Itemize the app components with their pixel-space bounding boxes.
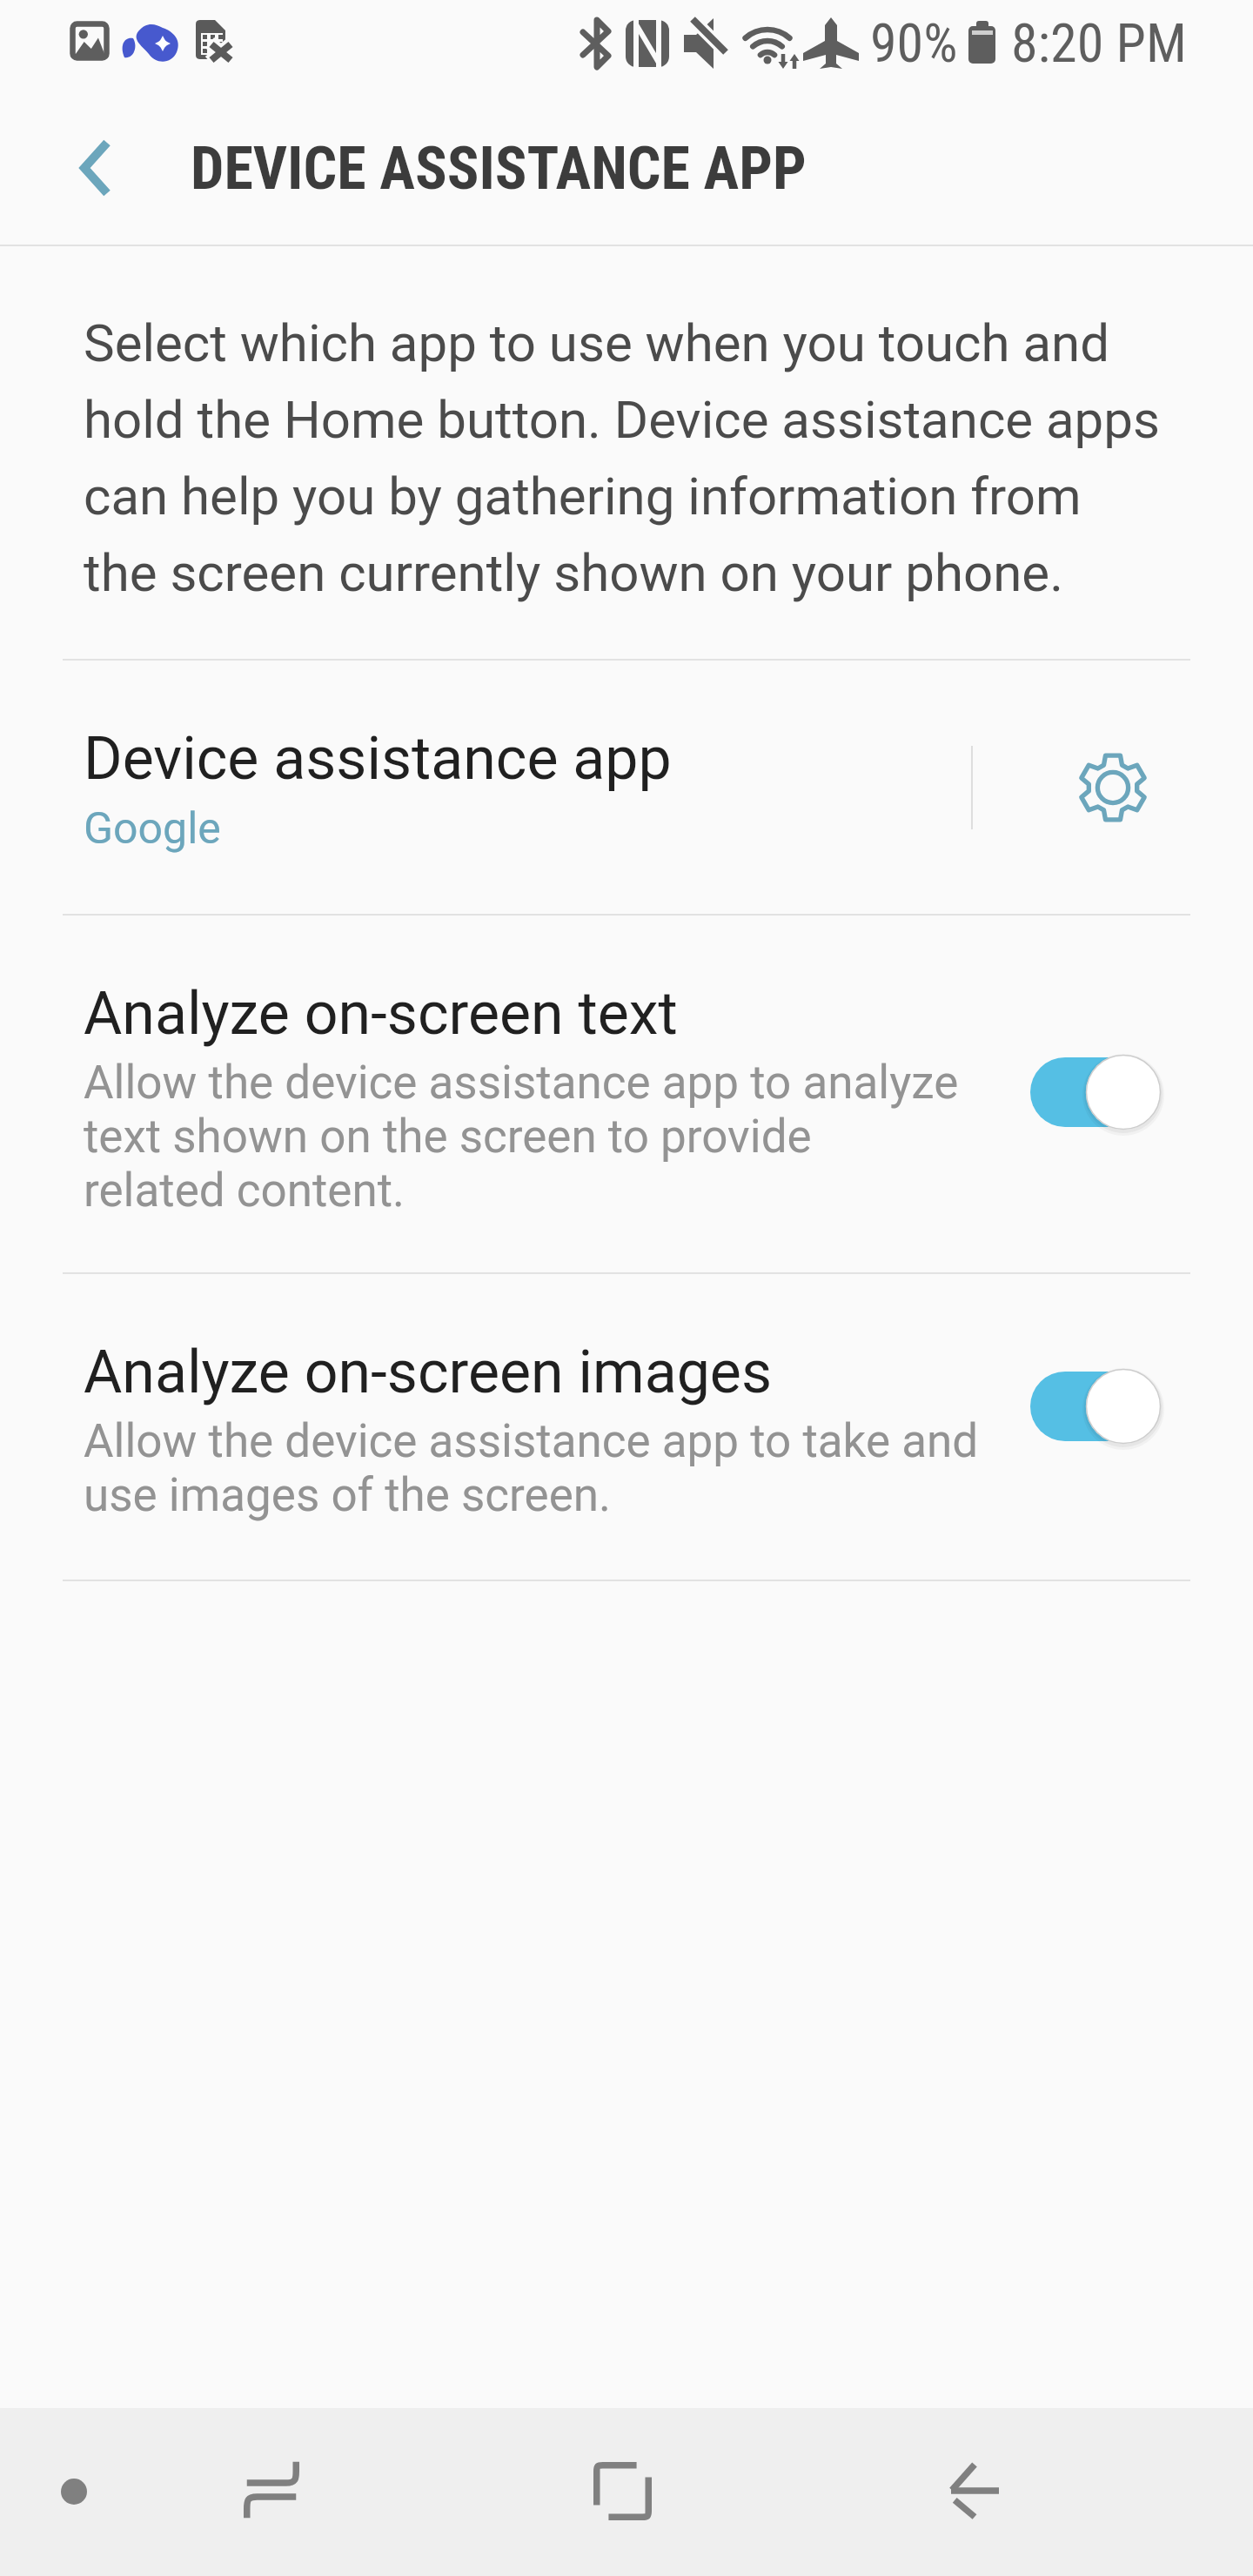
button[interactable]: Analyze on-screen text xyxy=(0,914,1253,1272)
staticText: 8:20 PM xyxy=(1011,11,1187,75)
staticText: Allow the device assistance app to analy… xyxy=(84,1056,959,1218)
button[interactable]: Device assistance app xyxy=(0,661,971,914)
staticText: DEVICE ASSISTANCE APP xyxy=(191,134,807,204)
button[interactable]: On xyxy=(1030,1050,1173,1134)
button[interactable]: Navigate up xyxy=(54,126,137,210)
staticText: Analyze on-screen images xyxy=(84,1338,772,1407)
button[interactable]: Home xyxy=(566,2434,679,2547)
button[interactable]: Recent apps xyxy=(219,2438,324,2542)
staticText: Google xyxy=(84,803,221,855)
button[interactable]: Analyze on-screen images xyxy=(0,1272,1253,1580)
staticText: Analyze on-screen text xyxy=(84,979,678,1049)
staticText: Select which app to use when you touch a… xyxy=(84,312,1160,603)
staticText: 90% xyxy=(870,11,958,75)
button[interactable]: Assist app settings xyxy=(973,661,1253,914)
staticText: Device assistance app xyxy=(84,724,672,794)
button[interactable]: On xyxy=(1030,1365,1173,1448)
button[interactable]: Back xyxy=(922,2438,1027,2543)
staticText: Allow the device assistance app to take … xyxy=(84,1414,979,1522)
